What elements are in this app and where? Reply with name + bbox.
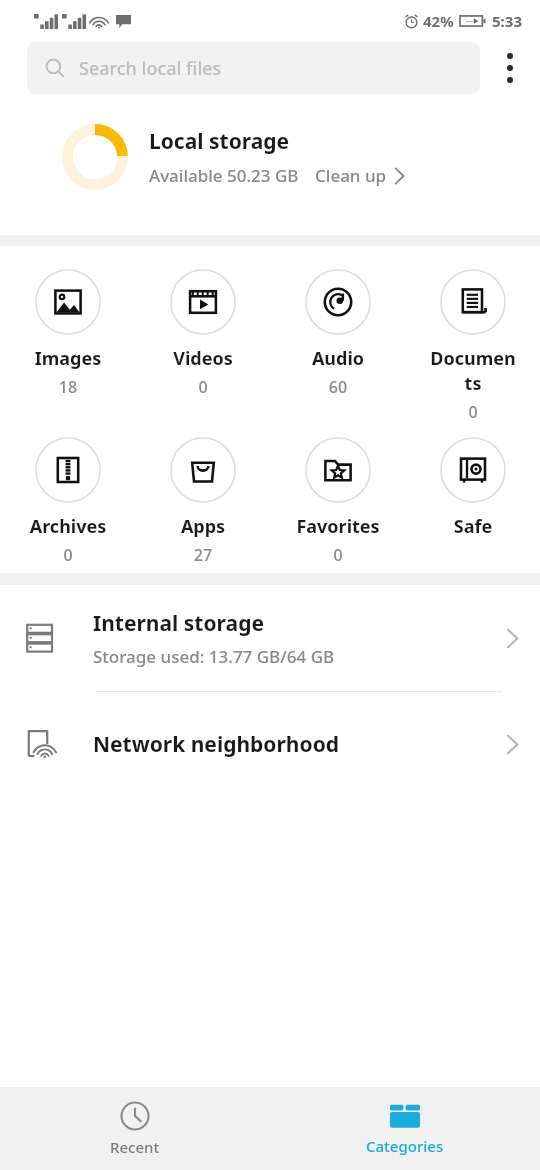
staticText: Network neighborhood <box>93 730 505 759</box>
staticText: Recent <box>110 1137 160 1157</box>
staticText: Documents <box>430 346 516 396</box>
staticText: Archives <box>25 514 111 539</box>
button[interactable]: Categories <box>270 1087 540 1170</box>
button[interactable]: More options <box>480 42 540 94</box>
button[interactable]: Search local files <box>27 42 480 94</box>
button[interactable]: Apps <box>135 433 270 573</box>
button[interactable]: Safe <box>405 433 540 573</box>
button[interactable]: Network neighborhood <box>0 692 540 796</box>
staticText: Storage used: 13.77 GB/64 GB <box>93 645 335 668</box>
staticText: Apps <box>160 514 246 539</box>
staticText: Audio <box>295 346 381 371</box>
staticText: 42% <box>423 11 454 31</box>
button[interactable]: Documents <box>405 265 540 433</box>
staticText: Internal storage <box>93 609 264 638</box>
staticText: Local storage <box>149 127 290 156</box>
staticText: Images <box>25 346 111 371</box>
staticText: Clean up <box>315 164 387 187</box>
button[interactable]: Videos <box>135 265 270 433</box>
button[interactable]: Audio <box>270 265 405 433</box>
button[interactable]: Recent <box>0 1087 270 1170</box>
staticText: 60 <box>295 376 381 398</box>
button[interactable]: Local storage <box>0 116 540 198</box>
staticText: Safe <box>430 514 516 539</box>
staticText: 5:33 <box>492 11 522 31</box>
staticText: 0 <box>430 401 516 423</box>
staticText: 27 <box>160 544 246 566</box>
staticText: 18 <box>25 376 111 398</box>
staticText: Favorites <box>295 514 381 539</box>
staticText: 0 <box>295 544 381 566</box>
staticText: Search local files <box>79 56 222 81</box>
staticText: Available 50.23 GB <box>149 164 299 187</box>
staticText: Categories <box>366 1136 444 1156</box>
button[interactable]: Images <box>0 265 135 433</box>
staticText: Videos <box>160 346 246 371</box>
button[interactable]: Archives <box>0 433 135 573</box>
staticText: 0 <box>25 544 111 566</box>
button[interactable]: Favorites <box>270 433 405 573</box>
staticText: 0 <box>160 376 246 398</box>
button[interactable]: Internal storage <box>0 585 540 691</box>
